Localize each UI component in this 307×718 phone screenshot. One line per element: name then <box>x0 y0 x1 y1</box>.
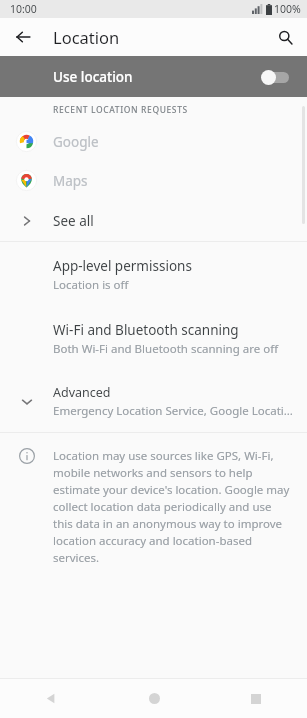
staticText: Advanced <box>53 384 111 401</box>
staticText: Emergency Location Service, Google Locat… <box>53 403 297 419</box>
staticText: See all <box>53 212 94 230</box>
button[interactable]: Maps <box>0 161 307 200</box>
button[interactable]: App-level permissions <box>0 242 307 308</box>
staticText: 100% <box>274 2 301 16</box>
button[interactable]: Use location <box>0 56 307 97</box>
staticText: Google <box>53 133 99 151</box>
button[interactable]: Wi-Fi and Bluetooth scanning <box>0 308 307 372</box>
button[interactable]: Advanced <box>0 372 307 432</box>
button[interactable]: Home <box>103 679 205 718</box>
staticText: RECENT LOCATION REQUESTS <box>53 104 188 116</box>
staticText: 10:00 <box>10 2 37 16</box>
button[interactable]: Google <box>0 122 307 161</box>
button[interactable]: Back <box>10 24 36 50</box>
staticText: Location may use sources like GPS, Wi-Fi… <box>53 448 291 565</box>
button[interactable]: See all <box>0 200 307 241</box>
staticText: Both Wi-Fi and Bluetooth scanning are of… <box>53 341 279 357</box>
button[interactable]: Recent apps <box>205 679 307 718</box>
staticText: Wi-Fi and Bluetooth scanning <box>53 321 239 339</box>
button[interactable]: Search <box>272 24 298 50</box>
staticText: Location <box>53 26 120 48</box>
staticText: Maps <box>53 172 88 190</box>
staticText: App-level permissions <box>53 257 192 275</box>
staticText: Use location <box>53 68 133 86</box>
button[interactable]: Back <box>0 679 103 718</box>
staticText: Location is off <box>53 277 129 293</box>
